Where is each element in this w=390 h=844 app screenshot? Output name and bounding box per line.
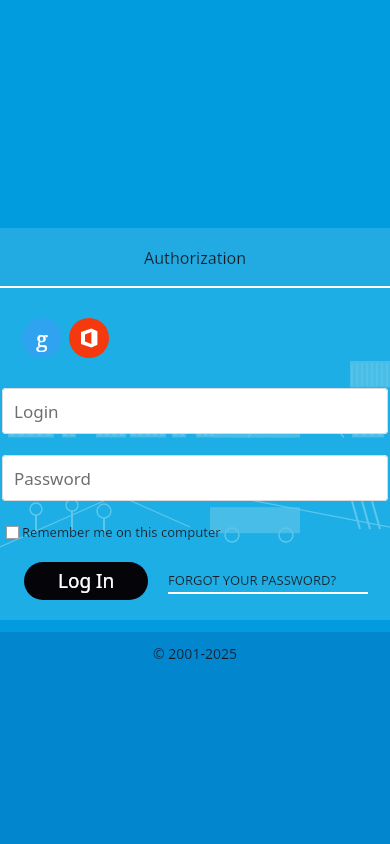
button[interactable]: Log In (24, 562, 148, 600)
button[interactable]: Sign in with Office 365 (69, 318, 109, 358)
staticText: Authorization (144, 247, 247, 269)
button[interactable]: Sign in with Google (22, 318, 62, 358)
staticText: Remember me on this computer (22, 523, 221, 541)
button[interactable]: Remember me on this computer (6, 523, 221, 541)
staticText: Login (14, 400, 59, 423)
button[interactable]: Password (2, 455, 388, 501)
staticText: © 2001-2025 (0, 644, 390, 663)
staticText: Password (14, 467, 91, 490)
staticText: FORGOT YOUR PASSWORD? (168, 571, 337, 589)
staticText: Log In (58, 568, 115, 594)
button[interactable]: Login (2, 388, 388, 434)
button[interactable]: FORGOT YOUR PASSWORD? (168, 571, 368, 594)
staticText: g (36, 323, 48, 353)
